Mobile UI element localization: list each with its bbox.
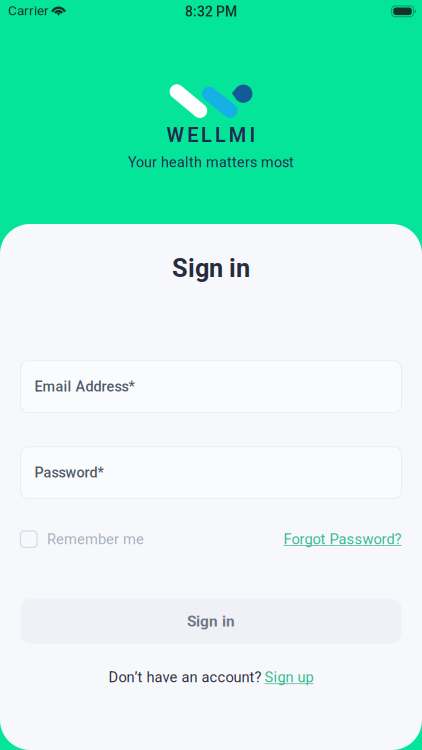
staticText: Sign in [172,253,250,283]
staticText: Email Address* [34,378,134,395]
staticText: Password* [34,464,103,481]
staticText: Forgot Password? [283,531,401,548]
staticText: Don’t have an account? [108,669,261,686]
button[interactable]: Sign in [20,599,401,644]
button[interactable]: Forgot Password? [283,531,401,548]
staticText: Sign in [187,612,235,630]
staticText: Remember me [47,531,144,548]
staticText: 8:32 PM [185,4,237,20]
button[interactable]: Remember me [20,531,144,548]
button[interactable]: Sign up [264,669,313,686]
staticText: Your health matters most [128,154,294,171]
staticText: Sign up [264,669,313,686]
staticText: Carrier [8,2,49,18]
staticText: WELLMI [166,123,255,147]
